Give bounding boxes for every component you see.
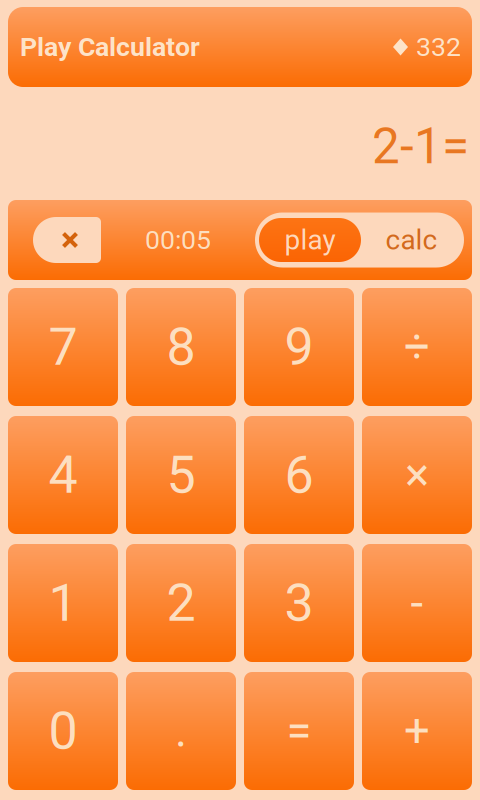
staticText: 2-1= — [372, 118, 469, 175]
staticText: 7 — [48, 316, 77, 377]
staticText: 3 — [284, 572, 313, 633]
staticText: 9 — [284, 316, 313, 377]
button[interactable]: 9 — [244, 288, 354, 406]
staticText: 5 — [166, 444, 195, 505]
button[interactable]: calc — [361, 218, 462, 262]
button[interactable]: = — [244, 672, 354, 790]
staticText: - — [410, 576, 423, 629]
staticText: 0 — [48, 700, 77, 761]
button[interactable]: + — [362, 672, 472, 790]
button[interactable]: 1 — [8, 544, 118, 662]
button[interactable]: 0 — [8, 672, 118, 790]
staticText: Play Calculator — [20, 31, 200, 63]
staticText: ÷ — [404, 320, 430, 373]
staticText: + — [404, 704, 430, 757]
button[interactable]: 7 — [8, 288, 118, 406]
staticText: 2 — [166, 572, 195, 633]
button[interactable]: 5 — [126, 416, 236, 534]
staticText: . — [175, 704, 187, 757]
staticText: calc — [385, 224, 437, 256]
button[interactable]: 8 — [126, 288, 236, 406]
staticText: = — [286, 704, 311, 757]
staticText: 6 — [284, 444, 313, 505]
staticText: 8 — [166, 316, 195, 377]
staticText: 00:05 — [145, 224, 211, 256]
button[interactable]: 6 — [244, 416, 354, 534]
button[interactable]: × — [362, 416, 472, 534]
staticText: 332 — [416, 31, 461, 63]
button[interactable]: ÷ — [362, 288, 472, 406]
staticText: × — [405, 448, 429, 501]
staticText: 1 — [48, 572, 77, 633]
button[interactable]: Play Calculator — [8, 7, 472, 87]
staticText: 4 — [48, 444, 77, 505]
button[interactable]: - — [362, 544, 472, 662]
button[interactable]: play — [259, 218, 361, 262]
button[interactable]: Clear — [33, 217, 101, 263]
button[interactable]: 4 — [8, 416, 118, 534]
staticText: play — [284, 224, 335, 256]
button[interactable]: 2 — [126, 544, 236, 662]
button[interactable]: 3 — [244, 544, 354, 662]
button[interactable]: . — [126, 672, 236, 790]
